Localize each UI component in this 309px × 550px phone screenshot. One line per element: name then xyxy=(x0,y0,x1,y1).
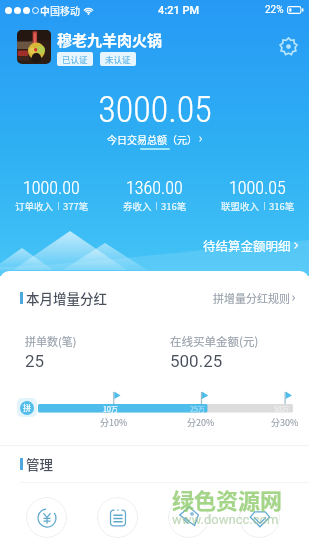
staticText: 未认证 xyxy=(105,53,131,65)
staticText: 穆老九羊肉火锅 xyxy=(57,29,163,51)
staticText: 分10% xyxy=(100,416,128,429)
staticText: 4:21 PM xyxy=(158,4,200,17)
button[interactable]: 今日交易总额（元） xyxy=(104,130,205,148)
staticText: 本月增量分红 xyxy=(26,288,107,308)
button[interactable]: 拼增量分红规则 xyxy=(213,287,295,309)
staticText: 316笔 xyxy=(161,199,187,213)
button[interactable]: Settings xyxy=(273,31,303,61)
button[interactable]: Shop photo xyxy=(17,30,51,64)
staticText: 在线买单金额(元) xyxy=(170,333,259,350)
staticText: 今日交易总额（元） xyxy=(107,132,197,146)
staticText: 50万 xyxy=(274,404,289,414)
button[interactable]: Coupons xyxy=(166,495,210,539)
staticText: 377笔 xyxy=(63,199,89,213)
button[interactable]: 待结算金额明细 xyxy=(191,233,309,257)
staticText: 分20% xyxy=(187,416,215,429)
staticText: 券收入 xyxy=(123,199,152,213)
staticText: 订单收入 xyxy=(15,199,54,213)
staticText: 管理 xyxy=(26,454,53,474)
button[interactable]: 已认证 xyxy=(57,52,93,66)
staticText: 25 xyxy=(25,351,45,371)
staticText: 分30% xyxy=(271,416,299,429)
staticText: 拼单数(笔) xyxy=(25,333,77,349)
button[interactable]: 未认证 xyxy=(100,52,136,66)
staticText: 3000.05 xyxy=(98,89,212,131)
staticText: 待结算金额明细 xyxy=(203,236,291,254)
staticText: 联盟收入 xyxy=(221,199,260,213)
staticText: 1000.05 xyxy=(229,177,286,198)
button[interactable]: Rewards xyxy=(237,495,281,539)
staticText: 22% xyxy=(265,4,284,16)
button[interactable]: 1360.00 xyxy=(103,177,206,213)
staticText: 中国移动 xyxy=(40,3,80,17)
staticText: www.downcc.com xyxy=(172,512,279,527)
staticText: 10万 xyxy=(103,404,118,414)
button[interactable]: 1000.05 xyxy=(206,177,309,213)
staticText: 500.25 xyxy=(170,351,223,371)
button[interactable]: 1000.00 xyxy=(0,177,103,213)
staticText: 拼增量分红规则 xyxy=(213,290,290,306)
button[interactable]: Orders xyxy=(95,495,139,539)
staticText: 绿色资源网 xyxy=(172,483,283,515)
staticText: 已认证 xyxy=(62,53,88,65)
staticText: 1360.00 xyxy=(126,177,183,198)
staticText: 拼 xyxy=(23,402,31,414)
staticText: 316笔 xyxy=(269,199,295,213)
staticText: 25万 xyxy=(190,404,205,414)
staticText: 1000.00 xyxy=(23,177,80,198)
button[interactable]: Income xyxy=(24,495,68,539)
